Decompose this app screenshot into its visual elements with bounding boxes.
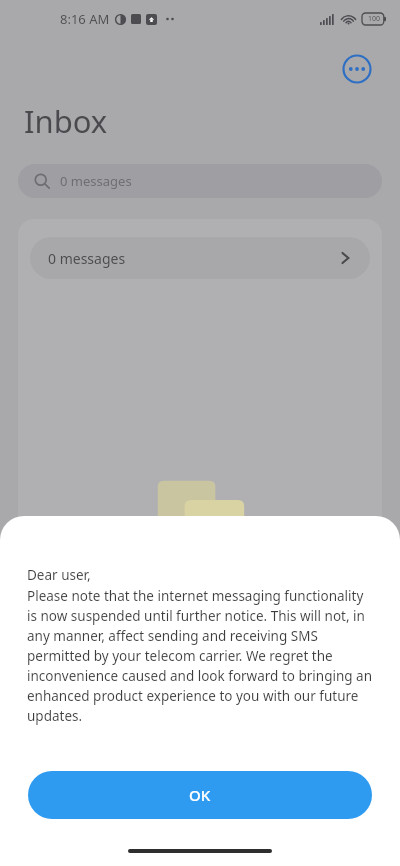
staticText: 0 messages <box>48 249 126 268</box>
staticText: OK <box>189 785 211 805</box>
staticText: 8:16 AM <box>60 10 110 28</box>
staticText: 0 messages <box>60 172 132 190</box>
staticText: Dear user, Please note that the internet… <box>27 566 373 725</box>
staticText: Inbox <box>24 100 108 142</box>
staticText: 100 <box>368 14 381 24</box>
button[interactable]: More options <box>340 52 374 86</box>
button[interactable]: OK <box>28 771 372 819</box>
button[interactable]: 0 messages <box>30 237 370 279</box>
button[interactable]: 0 messages <box>18 164 382 198</box>
staticText: No conversations <box>18 592 382 611</box>
